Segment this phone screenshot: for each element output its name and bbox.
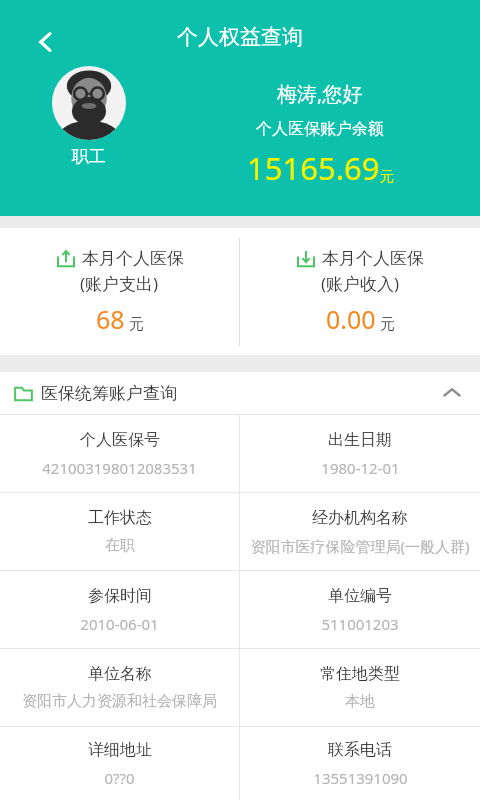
button[interactable]: Income — [240, 228, 480, 355]
staticText: 个人权益查询 — [177, 24, 303, 50]
staticText: 421003198012083531 — [42, 458, 197, 478]
staticText: 个人医保账户余额 — [256, 119, 384, 139]
staticText: 参保时间 — [88, 586, 152, 606]
staticText: 经办机构名称 — [312, 508, 408, 528]
staticText: 详细地址 — [88, 740, 152, 760]
staticText: 本月个人医保 — [322, 248, 424, 269]
staticText: 13551391090 — [313, 768, 408, 788]
staticText: 0??0 — [104, 768, 135, 788]
staticText: 个人医保号 — [80, 430, 160, 450]
staticText: 在职 — [105, 536, 135, 555]
button[interactable]: Back — [24, 20, 68, 64]
staticText: (账户支出) — [80, 272, 159, 295]
staticText: 15165.69 — [247, 147, 380, 189]
staticText: 元 — [380, 315, 395, 334]
staticText: 出生日期 — [328, 430, 392, 450]
button[interactable]: 医保统筹账户查询 — [0, 372, 480, 414]
staticText: 常住地类型 — [320, 664, 400, 684]
staticText: 元 — [380, 168, 394, 186]
staticText: 职工 — [72, 146, 106, 167]
staticText: 1980-12-01 — [321, 458, 400, 478]
staticText: 工作状态 — [88, 508, 152, 528]
button[interactable]: Expense — [0, 228, 239, 355]
staticText: 本地 — [345, 692, 375, 711]
staticText: 单位名称 — [88, 664, 152, 684]
staticText: 元 — [129, 315, 144, 334]
staticText: 单位编号 — [328, 586, 392, 606]
staticText: 本月个人医保 — [82, 248, 184, 269]
staticText: 联系电话 — [328, 740, 392, 760]
staticText: 0.00 — [326, 302, 376, 336]
staticText: 68 — [96, 302, 125, 336]
staticText: 医保统筹账户查询 — [41, 383, 177, 404]
staticText: 资阳市人力资源和社会保障局 — [22, 692, 217, 711]
staticText: 2010-06-01 — [80, 614, 159, 634]
staticText: 511001203 — [321, 614, 399, 634]
other: Collapse — [438, 379, 466, 407]
staticText: (账户收入) — [321, 272, 400, 295]
staticText: 资阳市医疗保险管理局(一般人群) — [250, 536, 470, 556]
staticText: 梅涛,您好 — [277, 80, 363, 107]
